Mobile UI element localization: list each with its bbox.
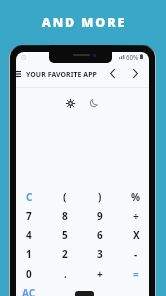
button[interactable]: ( <box>53 187 77 206</box>
button[interactable]: % <box>124 187 148 206</box>
button[interactable]: ÷ <box>124 206 148 225</box>
staticText: = <box>133 267 139 281</box>
button[interactable]: AC <box>17 283 41 296</box>
staticText: 5 <box>62 228 68 242</box>
staticText: - <box>134 247 138 261</box>
button[interactable]: 1 <box>17 244 41 263</box>
button[interactable]: Next <box>129 67 141 79</box>
staticText: % <box>131 190 141 204</box>
staticText: 1 <box>26 247 32 261</box>
staticText: 60% <box>126 53 139 60</box>
staticText: AND MORE <box>1 14 166 31</box>
button[interactable]: 5 <box>53 225 77 244</box>
staticText: 3 <box>97 247 103 261</box>
button[interactable]: 3 <box>88 244 112 263</box>
staticText: X <box>133 228 140 242</box>
staticText: ( <box>63 190 67 204</box>
button[interactable]: Menu <box>16 67 24 80</box>
staticText: C <box>26 190 33 204</box>
button[interactable]: + <box>88 264 112 283</box>
button[interactable]: . <box>53 264 77 283</box>
button[interactable]: 4 <box>17 225 41 244</box>
button[interactable]: ) <box>88 187 112 206</box>
button[interactable]: C <box>17 187 41 206</box>
staticText: ÷ <box>133 209 139 223</box>
button[interactable] <box>53 283 77 296</box>
staticText: 0 <box>26 267 32 281</box>
button[interactable]: Dark theme <box>87 96 101 110</box>
button[interactable]: 9 <box>88 206 112 225</box>
staticText: 2 <box>62 247 68 261</box>
button[interactable]: 6 <box>88 225 112 244</box>
staticText: . <box>64 267 67 281</box>
button[interactable]: 8 <box>53 206 77 225</box>
button[interactable]: Previous <box>106 67 118 79</box>
staticText: 4 <box>26 228 32 242</box>
staticText: + <box>97 267 103 281</box>
staticText: YOUR FAVORITE APP <box>26 70 97 79</box>
staticText: 7 <box>26 209 32 223</box>
button[interactable]: Light theme <box>63 96 77 110</box>
button[interactable]: 2 <box>53 244 77 263</box>
button[interactable]: - <box>124 244 148 263</box>
staticText: ) <box>98 190 102 204</box>
staticText: AC <box>22 286 36 296</box>
button[interactable] <box>88 283 112 296</box>
button[interactable]: 0 <box>17 264 41 283</box>
button[interactable]: 7 <box>17 206 41 225</box>
staticText: 9 <box>97 209 103 223</box>
staticText: 8 <box>62 209 68 223</box>
button[interactable]: X <box>124 225 148 244</box>
staticText: 6 <box>97 228 103 242</box>
button[interactable]: = <box>124 264 148 283</box>
